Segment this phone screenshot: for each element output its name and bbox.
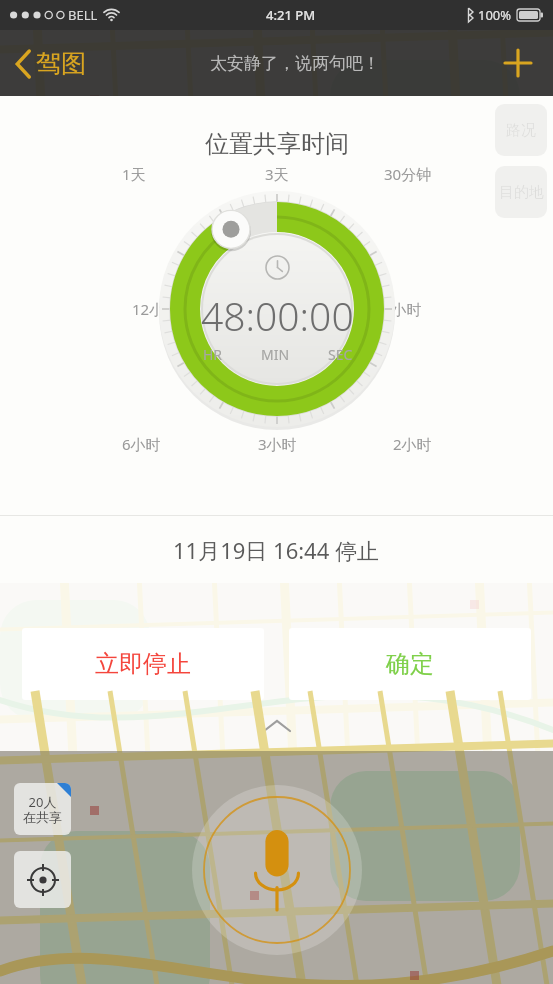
staticText: BELL [68, 6, 98, 24]
staticText: 3天 [265, 164, 289, 184]
staticText: MIN [261, 345, 290, 364]
staticText: 20人 在共享 [23, 793, 62, 826]
staticText: 11月19日 16:44 停止 [173, 535, 380, 565]
staticText: 2小时 [393, 434, 432, 454]
button[interactable]: 语音 [192, 785, 362, 955]
button[interactable]: 11月19日 16:44 停止 [0, 516, 553, 583]
button[interactable]: 路况 [495, 104, 547, 156]
button[interactable]: 确定 [289, 628, 531, 700]
staticText: 30分钟 [384, 164, 432, 184]
staticText: 太安静了，说两句吧！ [210, 53, 380, 74]
staticText: HR [203, 345, 223, 364]
button[interactable]: 收起 [255, 713, 299, 739]
staticText: 100% [478, 6, 512, 24]
staticText: 6小时 [122, 434, 161, 454]
staticText: 1小时 [383, 299, 422, 319]
staticText: 驾图 [36, 48, 86, 79]
button[interactable]: 定位 [14, 851, 71, 908]
button[interactable]: 20人 在共享 [14, 783, 71, 835]
staticText: 4:21 PM [266, 6, 316, 24]
button[interactable]: 添加 [497, 42, 539, 84]
staticText: 3小时 [258, 434, 297, 454]
staticText: 路况 [506, 121, 536, 140]
staticText: SEC [328, 345, 353, 364]
staticText: 目的地 [499, 183, 544, 202]
staticText: 位置共享时间 [205, 129, 349, 159]
staticText: 12小时 [132, 299, 180, 319]
staticText: 48:00:00 [201, 289, 354, 342]
staticText: 1天 [122, 164, 146, 184]
button[interactable]: 目的地 [495, 166, 547, 218]
button[interactable]: 驾图 [14, 48, 94, 79]
staticText: 立即停止 [95, 649, 191, 679]
button[interactable]: 立即停止 [22, 628, 264, 700]
staticText: 确定 [386, 649, 434, 679]
